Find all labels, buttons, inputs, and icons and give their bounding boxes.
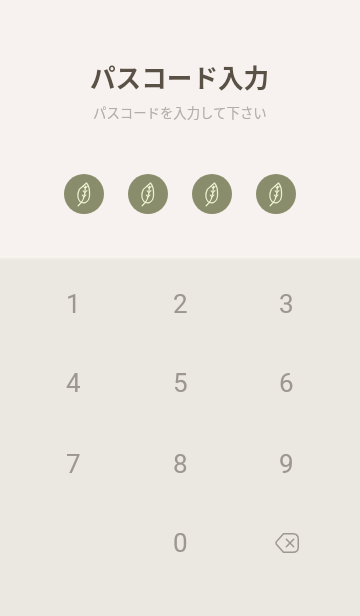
staticText: 3	[279, 289, 294, 319]
button[interactable]: 1	[27, 268, 119, 340]
button[interactable]: 3	[240, 268, 332, 340]
button[interactable]: 4	[27, 347, 119, 419]
staticText: パスコードを入力して下さい	[93, 102, 267, 121]
button[interactable]: 5	[134, 347, 226, 419]
button[interactable]: 2	[134, 268, 226, 340]
button[interactable]: 6	[240, 347, 332, 419]
button[interactable]: 9	[240, 428, 332, 500]
staticText: 0	[173, 528, 188, 558]
staticText: パスコード入力	[90, 58, 270, 95]
button[interactable]: 8	[134, 428, 226, 500]
staticText: 7	[66, 449, 81, 479]
staticText: 8	[173, 449, 188, 479]
staticText: 9	[279, 449, 294, 479]
staticText: 1	[66, 289, 81, 319]
staticText: 2	[173, 289, 188, 319]
button[interactable]: 0	[134, 507, 226, 579]
staticText: 5	[173, 368, 188, 398]
button[interactable]: 7	[27, 428, 119, 500]
staticText: 6	[279, 368, 294, 398]
staticText: 4	[66, 368, 81, 398]
button[interactable]: Backspace	[240, 507, 332, 579]
